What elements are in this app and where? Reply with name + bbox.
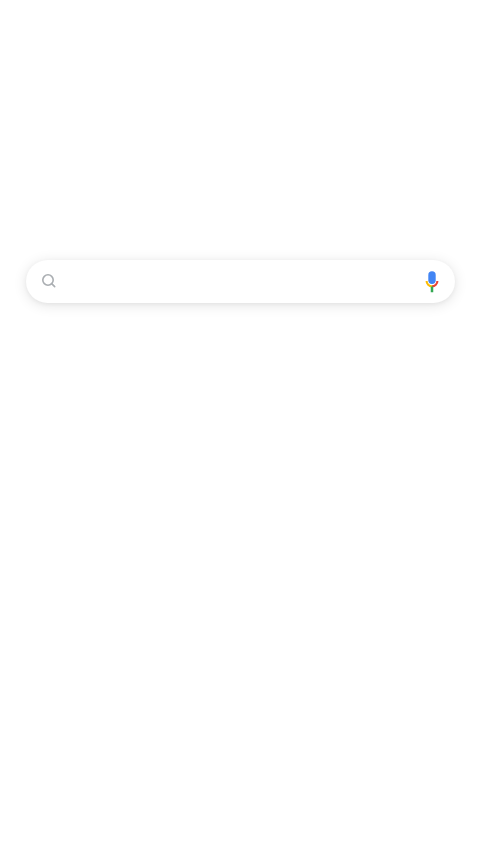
button[interactable]: Search <box>26 260 455 303</box>
other: Search <box>36 268 60 292</box>
other: Search by voice <box>420 269 444 293</box>
